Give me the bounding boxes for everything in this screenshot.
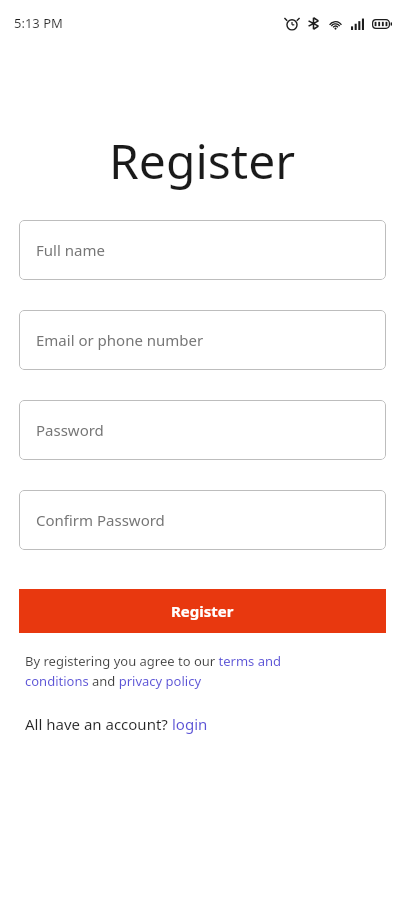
staticText: login (172, 714, 208, 734)
staticText: Password (36, 420, 104, 440)
staticText: 5:13 PM (14, 14, 63, 32)
staticText: Register (171, 601, 234, 621)
button[interactable]: Email or phone number (19, 310, 386, 370)
staticText: Email or phone number (36, 330, 204, 350)
button[interactable]: All have an account? (25, 714, 208, 734)
staticText: Confirm Password (36, 510, 165, 530)
button[interactable]: Register (19, 589, 386, 633)
button[interactable]: Password (19, 400, 386, 460)
staticText: Register (0, 128, 404, 193)
staticText: By registering you agree to our terms an… (25, 652, 345, 690)
button[interactable]: Confirm Password (19, 490, 386, 550)
staticText: Full name (36, 240, 105, 260)
button[interactable]: By registering you agree to our terms an… (25, 652, 345, 690)
staticText: All have an account? (25, 714, 172, 734)
button[interactable]: Full name (19, 220, 386, 280)
